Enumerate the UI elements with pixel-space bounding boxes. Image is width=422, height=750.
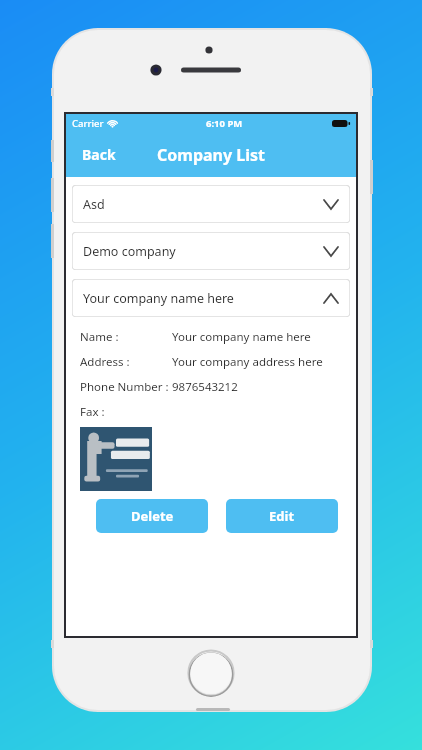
staticText: Asd (83, 196, 105, 213)
button[interactable]: Company logo (80, 427, 152, 491)
button[interactable]: Delete (96, 499, 208, 533)
staticText: Company List (157, 144, 265, 166)
staticText: Address : (80, 354, 130, 370)
staticText: 6:10 PM (206, 117, 243, 130)
staticText: Demo company (83, 243, 176, 260)
staticText: Your company name here (83, 290, 234, 307)
staticText: Your company name here (172, 329, 311, 345)
staticText: Your company address here (172, 354, 323, 370)
button[interactable]: Back (76, 141, 122, 168)
button[interactable]: Your company name here (72, 279, 350, 317)
button[interactable]: Edit (226, 499, 338, 533)
staticText: Delete (131, 507, 174, 525)
staticText: Back (82, 145, 116, 164)
staticText: Carrier (72, 117, 104, 130)
staticText: Name : (80, 329, 119, 345)
button[interactable]: Demo company (72, 232, 350, 270)
staticText: Phone Number : (80, 379, 169, 395)
staticText: 9876543212 (172, 379, 238, 395)
staticText: Fax : (80, 404, 105, 420)
staticText: Edit (269, 507, 295, 525)
button[interactable]: Asd (72, 185, 350, 223)
